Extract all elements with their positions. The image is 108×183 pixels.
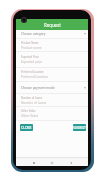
staticText: Other Value (21, 109, 36, 113)
staticText: Product name (21, 46, 42, 50)
button[interactable]: CLOSE (20, 124, 33, 131)
button[interactable]: Preferred Location (16, 68, 88, 82)
button[interactable]: Home (48, 159, 55, 166)
staticText: Product Name (21, 41, 39, 45)
staticText: Other Value (21, 114, 39, 118)
button[interactable]: Choose payment mode (16, 82, 88, 94)
button[interactable]: Request (16, 19, 88, 30)
button[interactable]: Product Name (16, 39, 88, 52)
button[interactable]: Back (67, 159, 74, 166)
button[interactable]: Number of Loans (16, 94, 88, 107)
button[interactable]: Expected Price (16, 52, 88, 68)
button[interactable]: SUBMIT (73, 124, 86, 131)
staticText: SUBMIT (73, 125, 86, 130)
staticText: Request (44, 22, 61, 28)
staticText: Number of Loans (21, 96, 43, 100)
staticText: Preferred Location (21, 75, 48, 79)
staticText: Choose category (21, 32, 46, 36)
button[interactable]: Choose category (16, 30, 88, 39)
button[interactable]: Recent apps (30, 159, 37, 166)
button[interactable]: Other Value (16, 107, 88, 121)
staticText: CLOSE (21, 125, 32, 130)
staticText: Number of Loans (21, 101, 47, 105)
staticText: Preferred Location (21, 70, 44, 74)
staticText: Choose payment mode (21, 86, 55, 90)
staticText: Expected Price (21, 55, 39, 59)
staticText: Expected price (21, 60, 43, 64)
